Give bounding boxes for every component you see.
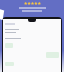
button[interactable] bbox=[3, 19, 61, 72]
